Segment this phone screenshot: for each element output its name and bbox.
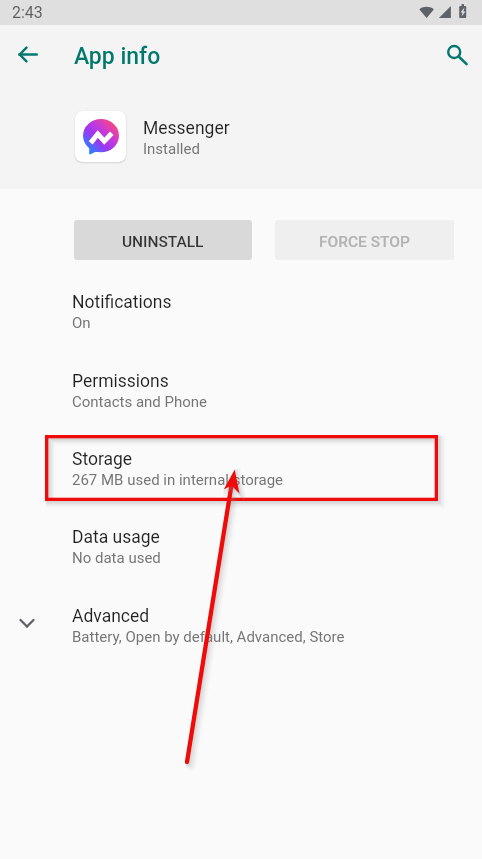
button[interactable]: Storage <box>0 434 482 512</box>
staticText: Notifications <box>72 292 172 313</box>
staticText: Advanced <box>72 606 150 627</box>
button[interactable]: Permissions <box>0 356 482 434</box>
staticText: Data usage <box>72 527 160 548</box>
button[interactable]: Expand advanced settings <box>5 603 49 647</box>
button[interactable]: Notifications <box>0 277 482 355</box>
staticText: App info <box>74 43 161 70</box>
staticText: UNINSTALL <box>122 233 204 251</box>
staticText: 2:43 <box>12 3 43 22</box>
button[interactable]: Advanced <box>0 591 482 669</box>
button[interactable]: Back <box>6 33 49 76</box>
button[interactable]: FORCE STOP <box>275 220 454 260</box>
button[interactable]: UNINSTALL <box>74 220 252 260</box>
button[interactable]: Data usage <box>0 512 482 590</box>
staticText: Installed <box>143 140 200 158</box>
staticText: Contacts and Phone <box>72 393 208 411</box>
staticText: FORCE STOP <box>319 233 410 251</box>
staticText: Messenger <box>143 118 230 139</box>
staticText: 267 MB used in internal storage <box>72 471 284 489</box>
button[interactable]: Search <box>432 33 475 76</box>
staticText: Permissions <box>72 371 169 392</box>
staticText: No data used <box>72 549 161 567</box>
staticText: Storage <box>72 449 133 470</box>
staticText: Battery, Open by default, Advanced, Stor… <box>72 628 345 646</box>
staticText: On <box>72 314 91 332</box>
